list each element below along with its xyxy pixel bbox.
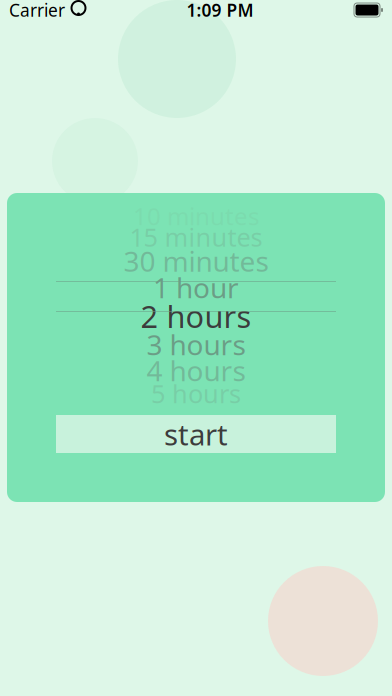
- staticText: 3 hours: [146, 326, 245, 363]
- button[interactable]: 5 hours: [56, 383, 336, 404]
- button[interactable]: 2 hours: [56, 301, 336, 331]
- staticText: 10 minutes: [133, 200, 259, 232]
- button[interactable]: 3 hours: [56, 331, 336, 358]
- staticText: 2 hours: [140, 296, 251, 336]
- staticText: 4 hours: [146, 352, 245, 389]
- button[interactable]: 15 minutes: [56, 226, 336, 248]
- button[interactable]: 1 hour: [56, 274, 336, 301]
- button[interactable]: start: [56, 415, 336, 453]
- staticText: 1:09 PM: [186, 0, 253, 21]
- staticText: 15 minutes: [129, 220, 262, 254]
- button[interactable]: 4 hours: [56, 358, 336, 383]
- staticText: 1 hour: [153, 269, 239, 306]
- staticText: 30 minutes: [123, 242, 268, 280]
- staticText: 5 hours: [151, 377, 241, 410]
- button[interactable]: 30 minutes: [56, 248, 336, 274]
- staticText: start: [164, 414, 228, 453]
- staticText: Carrier: [9, 0, 65, 21]
